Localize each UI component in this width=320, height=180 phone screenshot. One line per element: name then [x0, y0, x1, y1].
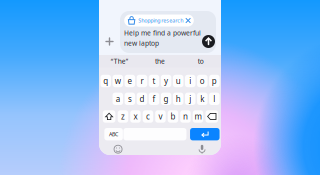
staticText: u: [176, 76, 181, 86]
staticText: to: [198, 57, 204, 66]
button[interactable]: e: [125, 75, 135, 87]
button[interactable]: j: [185, 93, 195, 105]
button[interactable]: k: [197, 93, 207, 105]
button[interactable]: t: [149, 75, 159, 87]
staticText: ABC: [109, 131, 118, 138]
button[interactable]: Emoji: [113, 144, 123, 154]
button[interactable]: a: [113, 93, 123, 105]
staticText: g: [164, 93, 169, 104]
button[interactable]: f: [149, 93, 159, 105]
button[interactable]: v: [155, 110, 166, 123]
button[interactable]: z: [118, 110, 128, 123]
button[interactable]: Send: [202, 35, 215, 48]
staticText: t: [152, 76, 155, 86]
staticText: l: [213, 93, 215, 104]
button[interactable]: Add attachment: [103, 35, 116, 48]
staticText: i: [189, 76, 191, 86]
staticText: new laptop: [124, 39, 159, 48]
staticText: the: [155, 57, 165, 66]
button[interactable]: g: [161, 93, 171, 105]
button[interactable]: b: [168, 110, 178, 123]
button[interactable]: u: [173, 75, 183, 87]
staticText: q: [103, 76, 108, 86]
staticText: a: [116, 93, 120, 104]
button[interactable]: r: [137, 75, 147, 87]
staticText: p: [212, 76, 217, 86]
button[interactable]: Shopping research: [124, 14, 194, 26]
button[interactable]: h: [173, 93, 183, 105]
staticText: “The”: [111, 57, 128, 66]
button[interactable]: q: [100, 75, 111, 87]
staticText: z: [121, 111, 125, 122]
button[interactable]: Return: [190, 128, 220, 140]
staticText: e: [127, 76, 132, 86]
button[interactable]: c: [143, 110, 153, 123]
staticText: m: [194, 111, 201, 122]
button[interactable]: l: [209, 93, 220, 105]
button[interactable]: x: [130, 110, 141, 123]
button[interactable]: ABC: [104, 128, 123, 140]
button[interactable]: Delete: [205, 110, 218, 123]
staticText: o: [200, 76, 205, 86]
button[interactable]: m: [193, 110, 203, 123]
staticText: v: [158, 111, 162, 122]
button[interactable]: Shift: [103, 110, 115, 123]
staticText: f: [152, 93, 155, 104]
staticText: n: [183, 111, 188, 122]
button[interactable]: i: [185, 75, 195, 87]
button[interactable]: n: [180, 110, 191, 123]
button[interactable]: d: [137, 93, 147, 105]
button[interactable]: “The”: [99, 55, 140, 67]
staticText: y: [164, 76, 168, 86]
staticText: c: [146, 111, 150, 122]
button[interactable]: Dictate: [197, 144, 207, 154]
staticText: Shopping research: [138, 17, 183, 24]
button[interactable]: w: [113, 75, 123, 87]
staticText: d: [139, 93, 144, 104]
staticText: w: [115, 76, 121, 86]
staticText: r: [140, 76, 143, 86]
staticText: b: [170, 111, 175, 122]
staticText: Help me find a powerful: [124, 28, 201, 37]
staticText: s: [128, 93, 132, 104]
button[interactable]: s: [125, 93, 135, 105]
button[interactable]: o: [197, 75, 207, 87]
button[interactable]: p: [209, 75, 220, 87]
staticText: x: [133, 111, 137, 122]
button[interactable]: the: [140, 55, 180, 67]
staticText: k: [200, 93, 204, 104]
button[interactable]: to: [180, 55, 221, 67]
staticText: j: [189, 93, 191, 104]
button[interactable]: y: [161, 75, 171, 87]
staticText: h: [176, 93, 181, 104]
